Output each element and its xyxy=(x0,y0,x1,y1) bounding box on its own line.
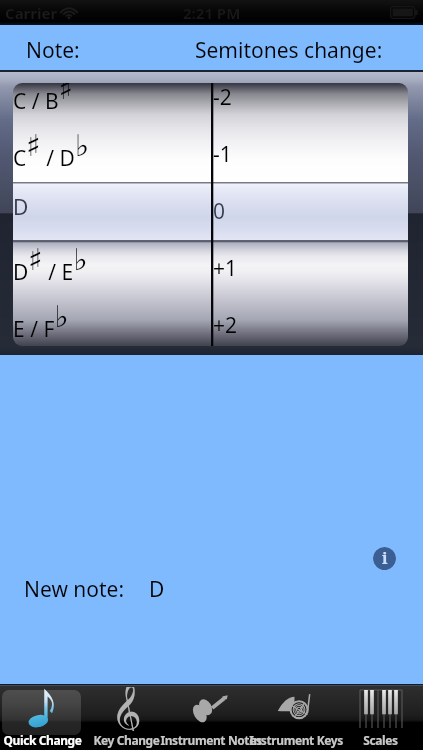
staticText: -2 xyxy=(213,83,232,112)
button[interactable]: 0 xyxy=(213,183,408,240)
staticText: Quick Change xyxy=(3,732,82,748)
staticText: Scales xyxy=(363,732,398,748)
button[interactable]: Info xyxy=(373,547,396,570)
other: Battery xyxy=(390,6,418,19)
staticText: +1 xyxy=(213,254,238,283)
button[interactable]: Instrument Notes xyxy=(168,684,253,750)
other: Wi-Fi xyxy=(60,6,78,19)
staticText: 2:21 PM xyxy=(183,3,241,23)
staticText: Instrument Keys xyxy=(249,732,343,748)
staticText: +2 xyxy=(213,311,238,340)
staticText: D♯ / E♭ xyxy=(13,242,88,287)
staticText: 0 xyxy=(213,197,226,226)
button[interactable]: Quick Change xyxy=(0,684,84,750)
staticText: Semitones change: xyxy=(195,36,383,65)
staticText: Key Change xyxy=(93,732,160,748)
staticText: C / B♯ xyxy=(13,83,74,116)
button[interactable]: C♯ / D♭ xyxy=(13,126,211,183)
button[interactable]: E / F♭ xyxy=(13,297,211,346)
staticText: i xyxy=(382,547,388,569)
staticText: New note: xyxy=(24,575,125,604)
button[interactable]: Instrument Keys xyxy=(253,684,338,750)
staticText: 𝄞 xyxy=(111,687,142,731)
staticText: D xyxy=(149,575,165,604)
button[interactable]: Scales xyxy=(338,684,423,750)
staticText: C♯ / D♭ xyxy=(13,128,90,173)
button[interactable]: +1 xyxy=(213,240,408,297)
staticText: -1 xyxy=(213,140,232,169)
staticText: Carrier xyxy=(5,3,58,23)
staticText: D xyxy=(13,193,29,222)
button[interactable]: D xyxy=(13,183,211,240)
button[interactable]: 𝄞 xyxy=(84,684,168,750)
staticText: Note: xyxy=(26,36,80,65)
staticText: Instrument Notes xyxy=(160,732,262,748)
button[interactable]: C / B♯ xyxy=(13,83,211,126)
button[interactable]: D♯ / E♭ xyxy=(13,240,211,297)
button[interactable]: -1 xyxy=(213,126,408,183)
staticText: E / F♭ xyxy=(13,299,69,344)
button[interactable]: -2 xyxy=(213,83,408,126)
button[interactable]: +2 xyxy=(213,297,408,346)
